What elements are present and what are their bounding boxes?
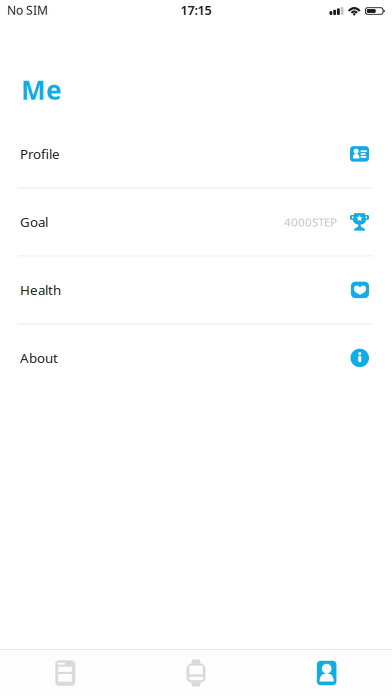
staticText: Health <box>20 281 61 299</box>
button[interactable]: Records <box>0 650 131 696</box>
staticText: Profile <box>20 145 60 163</box>
button[interactable]: About <box>0 324 392 391</box>
button[interactable]: Profile <box>0 120 392 187</box>
button[interactable]: Health <box>0 256 392 323</box>
staticText: Goal <box>20 213 48 231</box>
button[interactable]: Device <box>131 650 261 696</box>
staticText: Me <box>21 72 62 107</box>
staticText: No SIM <box>7 2 48 18</box>
button[interactable]: Goal <box>0 188 392 255</box>
button[interactable]: Me <box>261 650 392 696</box>
staticText: 4000STEP <box>284 214 337 230</box>
staticText: 17:15 <box>180 1 211 19</box>
staticText: About <box>20 349 58 367</box>
